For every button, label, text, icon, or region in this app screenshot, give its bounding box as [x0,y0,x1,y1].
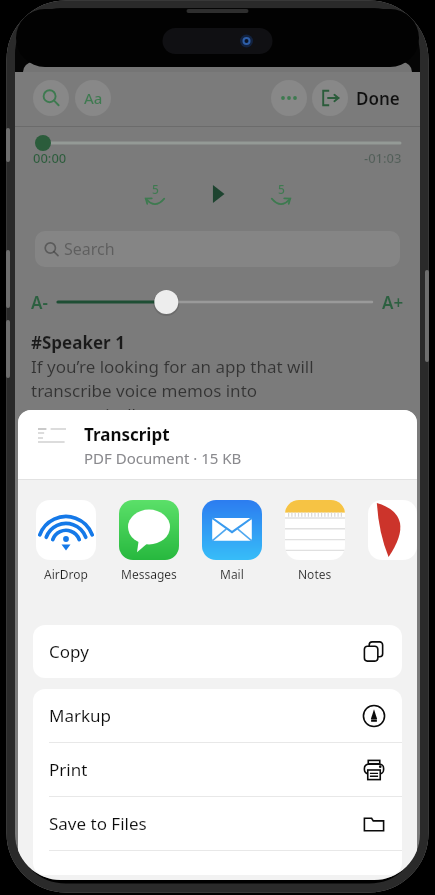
staticText: Aa [84,88,103,108]
staticText: Search [64,238,115,260]
staticText: 00:00 [33,149,67,167]
button[interactable]: Forward 5 [261,174,301,214]
staticText: A- [31,291,48,314]
button[interactable]: Notes [285,500,345,582]
staticText: Mail [220,566,244,582]
staticText: Markup [49,704,112,727]
button[interactable]: Messages [119,500,179,582]
button[interactable]: Save to Files [33,797,402,850]
button[interactable]: Copy [33,625,402,678]
staticText: AirDrop [44,566,88,582]
button[interactable]: Text size [75,80,111,116]
button[interactable]: Done [354,87,402,110]
staticText: -01:03 [364,149,402,167]
staticText: A+ [382,291,404,314]
button[interactable]: Markup [33,689,402,742]
button[interactable]: Back 5 [135,174,175,214]
button[interactable]: AirDrop [36,500,96,582]
staticText: PDF Document · 15 KB [84,448,242,468]
staticText: Messages [121,566,177,582]
button[interactable]: Share [312,80,348,116]
staticText: Save to Files [49,812,147,835]
staticText: 5 [152,181,159,197]
staticText: Print [49,758,88,781]
button[interactable]: Mail [202,500,262,582]
staticText: #Speaker 1 [31,331,125,354]
button[interactable]: Search [35,231,400,267]
staticText: If you’re looking for an app that will t… [31,355,314,426]
button[interactable]: Search [33,80,69,116]
staticText: Notes [298,566,332,582]
button[interactable]: More [271,80,307,116]
button[interactable]: Play [203,179,233,209]
staticText: Copy [49,640,89,663]
button[interactable] [368,500,417,566]
staticText: Done [356,87,400,110]
staticText: 5 [278,181,285,197]
button[interactable]: Print [33,743,402,796]
staticText: Transcript [84,423,170,446]
